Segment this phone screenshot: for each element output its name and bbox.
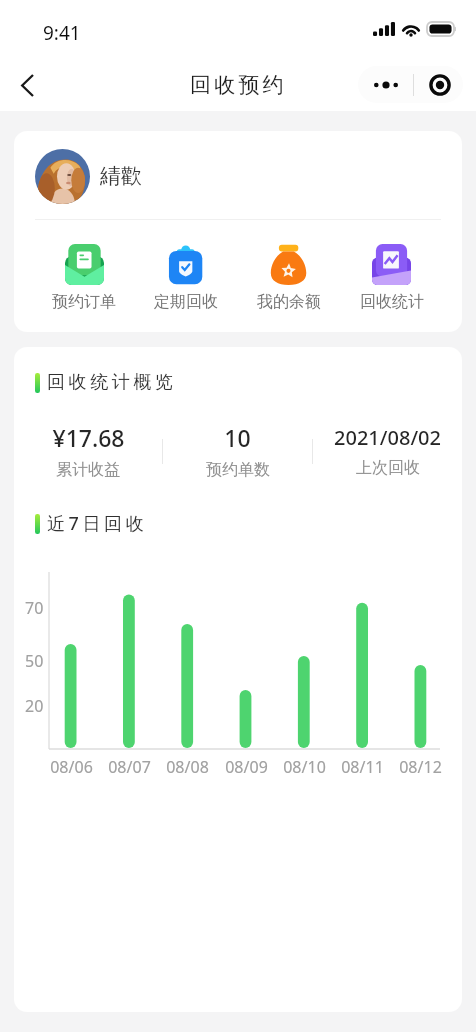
staticText: 70	[25, 597, 44, 619]
staticText: 上次回收	[356, 458, 420, 478]
staticText: 预约订单	[52, 292, 116, 312]
staticText: 08/08	[166, 756, 209, 778]
staticText: 08/09	[225, 756, 268, 778]
staticText: ¥17.68	[52, 422, 125, 453]
staticText: 20	[25, 695, 44, 717]
staticText: 近7日回收	[47, 511, 148, 536]
staticText: 9:41	[43, 20, 81, 46]
staticText: 08/11	[341, 756, 384, 778]
staticText: 08/07	[108, 756, 151, 778]
staticText: 回收统计	[360, 292, 424, 312]
staticText: 回收预约	[190, 72, 287, 98]
staticText: 我的余额	[257, 292, 321, 312]
button[interactable]: 綪歡	[35, 149, 462, 204]
staticText: 綪歡	[100, 163, 142, 189]
button[interactable]: Back	[7, 65, 47, 105]
staticText: 08/06	[50, 756, 93, 778]
staticText: 50	[25, 650, 44, 672]
staticText: 累计收益	[56, 460, 120, 480]
staticText: 08/10	[283, 756, 326, 778]
staticText: 2021/08/02	[334, 424, 441, 451]
staticText: 预约单数	[206, 460, 270, 480]
button[interactable]: More options	[358, 66, 463, 103]
staticText: 10	[224, 422, 251, 453]
button[interactable]: 我的余额	[237, 244, 340, 312]
staticText: 定期回收	[154, 292, 218, 312]
button[interactable]: 定期回收	[135, 244, 237, 312]
button[interactable]: 预约订单	[33, 244, 135, 312]
staticText: 回收统计概览	[47, 371, 177, 394]
staticText: 08/12	[399, 756, 442, 778]
button[interactable]: 回收统计	[340, 244, 443, 312]
